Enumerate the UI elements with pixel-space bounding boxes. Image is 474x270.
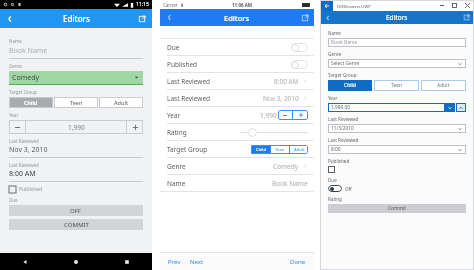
button[interactable]: Year bbox=[160, 107, 314, 124]
staticText: Target Group bbox=[9, 89, 37, 95]
staticText: Last Reviewed bbox=[167, 94, 211, 103]
button[interactable]: Book Name bbox=[9, 46, 143, 59]
staticText: Last Reviewed bbox=[167, 77, 211, 86]
staticText: 1,990 bbox=[260, 111, 277, 120]
button[interactable]: Child bbox=[251, 145, 270, 154]
staticText: Last Reviewed bbox=[328, 137, 359, 143]
button[interactable]: Increase year bbox=[127, 120, 143, 134]
staticText: Teen bbox=[70, 99, 83, 106]
button[interactable]: Teen bbox=[374, 80, 419, 91]
button[interactable]: Comedy bbox=[9, 71, 143, 84]
staticText: Target Group bbox=[328, 72, 357, 78]
button[interactable]: Commit bbox=[328, 204, 466, 213]
staticText: Last Reviewed bbox=[9, 162, 39, 168]
staticText: Child bbox=[24, 99, 38, 106]
button[interactable]: Teen bbox=[271, 145, 289, 154]
button[interactable]: Minimize bbox=[435, 0, 448, 11]
button[interactable]: Decrease year bbox=[9, 120, 25, 134]
staticText: Rating bbox=[167, 128, 187, 137]
staticText: Published bbox=[19, 186, 43, 193]
button[interactable]: Genre bbox=[160, 158, 314, 175]
staticText: Last Reviewed bbox=[328, 116, 359, 122]
button[interactable]: Back bbox=[320, 11, 336, 24]
staticText: COMMIT bbox=[64, 221, 89, 229]
button[interactable]: Done bbox=[288, 256, 308, 268]
button[interactable]: Name bbox=[160, 175, 314, 191]
staticText: Commit bbox=[388, 205, 406, 212]
button[interactable]: Adult bbox=[99, 97, 143, 108]
button[interactable]: Next bbox=[188, 256, 206, 268]
staticText: Editors bbox=[386, 13, 408, 22]
staticText: 8:00 bbox=[331, 146, 341, 153]
button[interactable]: Teen bbox=[54, 97, 98, 108]
button[interactable]: Decrease bbox=[278, 110, 292, 120]
button[interactable]: Open editor bbox=[132, 9, 152, 28]
button[interactable]: Back bbox=[0, 9, 20, 28]
staticText: Genre bbox=[328, 51, 342, 57]
button[interactable]: Back bbox=[0, 253, 50, 270]
button[interactable]: Child bbox=[328, 80, 372, 91]
staticText: Due bbox=[9, 197, 18, 203]
button[interactable]: Maximize bbox=[448, 0, 461, 11]
button[interactable]: Book Name bbox=[328, 38, 466, 47]
button[interactable]: Off bbox=[328, 185, 352, 192]
staticText: Name bbox=[9, 38, 22, 44]
button[interactable]: Select Genre bbox=[328, 59, 466, 68]
staticText: 11:15 bbox=[136, 1, 149, 8]
button[interactable]: 1,990 bbox=[26, 120, 126, 134]
staticText: IDEBrowser.UWP bbox=[337, 3, 371, 9]
button[interactable]: Rating bbox=[160, 124, 314, 141]
button[interactable]: Child bbox=[9, 97, 53, 108]
button[interactable]: Back bbox=[320, 0, 333, 11]
button[interactable]: Back bbox=[160, 9, 178, 26]
staticText: Child bbox=[256, 147, 266, 153]
button[interactable]: Target Group bbox=[160, 141, 314, 158]
button[interactable]: Prev bbox=[166, 256, 183, 268]
staticText: Adult bbox=[114, 99, 129, 106]
staticText: Off bbox=[345, 186, 352, 192]
button[interactable] bbox=[240, 127, 308, 137]
staticText: Editors bbox=[63, 13, 90, 24]
button[interactable]: Last Reviewed bbox=[160, 90, 314, 107]
button[interactable]: Open editor bbox=[296, 9, 314, 26]
button[interactable]: 8:00 bbox=[328, 145, 466, 154]
staticText: Adult bbox=[437, 82, 450, 89]
staticText: Due bbox=[328, 177, 337, 183]
button[interactable]: 11/3/2010 bbox=[328, 124, 466, 133]
button[interactable] bbox=[328, 166, 335, 173]
staticText: Next bbox=[190, 258, 204, 266]
button[interactable]: 1,990.00 bbox=[328, 103, 445, 112]
button[interactable]: Recents bbox=[101, 253, 152, 270]
staticText: Select Genre bbox=[331, 60, 360, 67]
staticText: Adult bbox=[294, 147, 305, 153]
staticText: Name bbox=[167, 179, 186, 188]
staticText: Comedy bbox=[273, 162, 299, 171]
button[interactable]: Open editor bbox=[458, 11, 474, 24]
button[interactable]: Adult bbox=[421, 80, 466, 91]
button[interactable]: Decrease year bbox=[445, 103, 455, 112]
button[interactable]: Last Reviewed bbox=[160, 73, 314, 90]
staticText: Book Name bbox=[331, 39, 358, 46]
button[interactable]: Home bbox=[50, 253, 101, 270]
button[interactable]: 8:00 AM bbox=[9, 169, 143, 182]
button[interactable]: Increase bbox=[293, 110, 308, 120]
staticText: 1,990 bbox=[68, 123, 85, 132]
staticText: Editors bbox=[224, 13, 250, 23]
staticText: Teen bbox=[391, 82, 403, 89]
staticText: Year bbox=[328, 95, 338, 101]
button[interactable]: Published bbox=[160, 56, 314, 73]
button[interactable]: Due bbox=[160, 39, 314, 56]
staticText: Name bbox=[328, 30, 341, 36]
button[interactable]: Close bbox=[461, 0, 474, 11]
staticText: 11/3/2010 bbox=[331, 125, 354, 132]
button[interactable]: Increase year bbox=[456, 103, 466, 112]
button[interactable]: Published bbox=[9, 186, 43, 193]
button[interactable]: Nov 3, 2010 bbox=[9, 145, 143, 158]
staticText: 1,990.00 bbox=[331, 104, 351, 111]
staticText: Year bbox=[9, 112, 19, 118]
staticText: Prev bbox=[168, 258, 181, 266]
button[interactable]: OFF bbox=[9, 205, 143, 216]
button[interactable]: Adult bbox=[290, 145, 308, 154]
staticText: Book Name bbox=[272, 179, 308, 188]
button[interactable]: COMMIT bbox=[9, 219, 143, 230]
